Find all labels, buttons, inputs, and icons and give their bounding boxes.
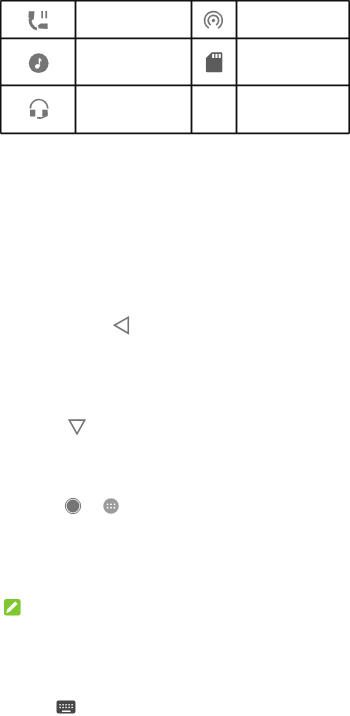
button[interactable]: Back (109, 313, 133, 337)
button[interactable]: Call on hold (1, 1, 76, 39)
button[interactable]: Home (61, 494, 85, 518)
button[interactable]: SD card (191, 38, 236, 85)
button[interactable]: Collapse (65, 415, 89, 439)
button[interactable]: All apps (99, 494, 123, 518)
button[interactable]: Edit (4, 599, 21, 616)
button[interactable]: Wi-Fi tethering (191, 1, 236, 39)
button[interactable]: Headset (1, 85, 76, 133)
button[interactable]: Music (1, 38, 76, 85)
button[interactable]: Keyboard (54, 695, 78, 716)
